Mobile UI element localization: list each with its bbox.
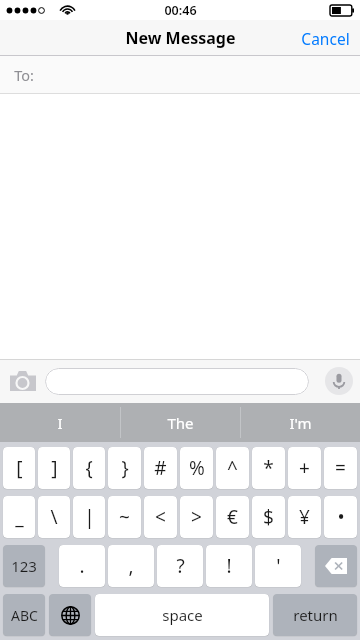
button[interactable]: ABC bbox=[3, 594, 45, 636]
staticText: ] bbox=[51, 455, 58, 481]
staticText: > bbox=[191, 504, 202, 530]
button[interactable]: Change keyboard language bbox=[49, 594, 91, 636]
button[interactable]: Backspace bbox=[315, 545, 357, 587]
button[interactable]: ? bbox=[157, 545, 203, 587]
button[interactable]: The bbox=[121, 403, 240, 442]
button[interactable]: I'm bbox=[241, 403, 360, 442]
button[interactable]: To: bbox=[0, 56, 360, 94]
staticText: , bbox=[128, 553, 134, 579]
button[interactable]: • bbox=[324, 496, 357, 538]
staticText: ¥ bbox=[299, 504, 310, 530]
staticText: = bbox=[335, 455, 346, 481]
button[interactable]: Cancel bbox=[291, 22, 360, 55]
staticText: _ bbox=[15, 504, 24, 530]
button[interactable]: < bbox=[144, 496, 177, 538]
button[interactable]: _ bbox=[3, 496, 35, 538]
button[interactable]: } bbox=[108, 447, 141, 489]
staticText: I'm bbox=[289, 413, 312, 433]
staticText: ? bbox=[176, 553, 185, 579]
staticText: < bbox=[155, 504, 166, 530]
button[interactable]: ' bbox=[255, 545, 301, 587]
staticText: 123 bbox=[11, 556, 37, 576]
staticText: | bbox=[84, 504, 95, 530]
button[interactable]: | bbox=[73, 496, 105, 538]
staticText: • bbox=[337, 504, 345, 530]
button[interactable]: € bbox=[216, 496, 249, 538]
staticText: € bbox=[227, 504, 238, 530]
button[interactable]: \ bbox=[38, 496, 70, 538]
button[interactable]: I bbox=[0, 403, 120, 442]
staticText: The bbox=[167, 413, 194, 433]
button[interactable] bbox=[45, 368, 309, 395]
button[interactable]: ] bbox=[38, 447, 70, 489]
staticText: 00:46 bbox=[164, 2, 197, 19]
button[interactable]: % bbox=[180, 447, 213, 489]
staticText: $ bbox=[263, 504, 274, 530]
button[interactable]: return bbox=[273, 594, 357, 636]
staticText: { bbox=[85, 455, 93, 481]
button[interactable]: ! bbox=[206, 545, 252, 587]
button[interactable]: * bbox=[252, 447, 285, 489]
staticText: % bbox=[189, 455, 205, 481]
staticText: ! bbox=[226, 553, 232, 579]
button[interactable]: $ bbox=[252, 496, 285, 538]
staticText: ' bbox=[276, 553, 281, 579]
staticText: New Message bbox=[125, 27, 236, 49]
button[interactable]: # bbox=[144, 447, 177, 489]
staticText: I bbox=[57, 413, 63, 433]
staticText: ~ bbox=[119, 504, 130, 530]
button[interactable]: ¥ bbox=[288, 496, 321, 538]
staticText: [ bbox=[16, 455, 23, 481]
staticText: * bbox=[263, 455, 274, 481]
button[interactable]: Voice message bbox=[323, 365, 355, 397]
button[interactable]: + bbox=[288, 447, 321, 489]
staticText: To: bbox=[14, 65, 34, 85]
staticText: # bbox=[154, 455, 167, 481]
button[interactable]: . bbox=[59, 545, 105, 587]
staticText: return bbox=[293, 605, 338, 625]
button[interactable]: { bbox=[73, 447, 105, 489]
button[interactable]: = bbox=[324, 447, 357, 489]
button[interactable]: , bbox=[108, 545, 154, 587]
button[interactable]: > bbox=[180, 496, 213, 538]
button[interactable]: [ bbox=[3, 447, 35, 489]
staticText: Cancel bbox=[301, 28, 350, 49]
button[interactable]: 123 bbox=[3, 545, 45, 587]
staticText: } bbox=[121, 455, 129, 481]
staticText: ABC bbox=[11, 606, 38, 625]
staticText: . bbox=[79, 553, 85, 579]
staticText: \ bbox=[50, 504, 58, 530]
button[interactable]: ~ bbox=[108, 496, 141, 538]
staticText: + bbox=[299, 455, 310, 481]
button[interactable]: ^ bbox=[216, 447, 249, 489]
button[interactable]: space bbox=[95, 594, 269, 636]
staticText: space bbox=[162, 605, 203, 625]
staticText: ^ bbox=[227, 455, 238, 481]
button[interactable]: Camera bbox=[6, 364, 40, 398]
